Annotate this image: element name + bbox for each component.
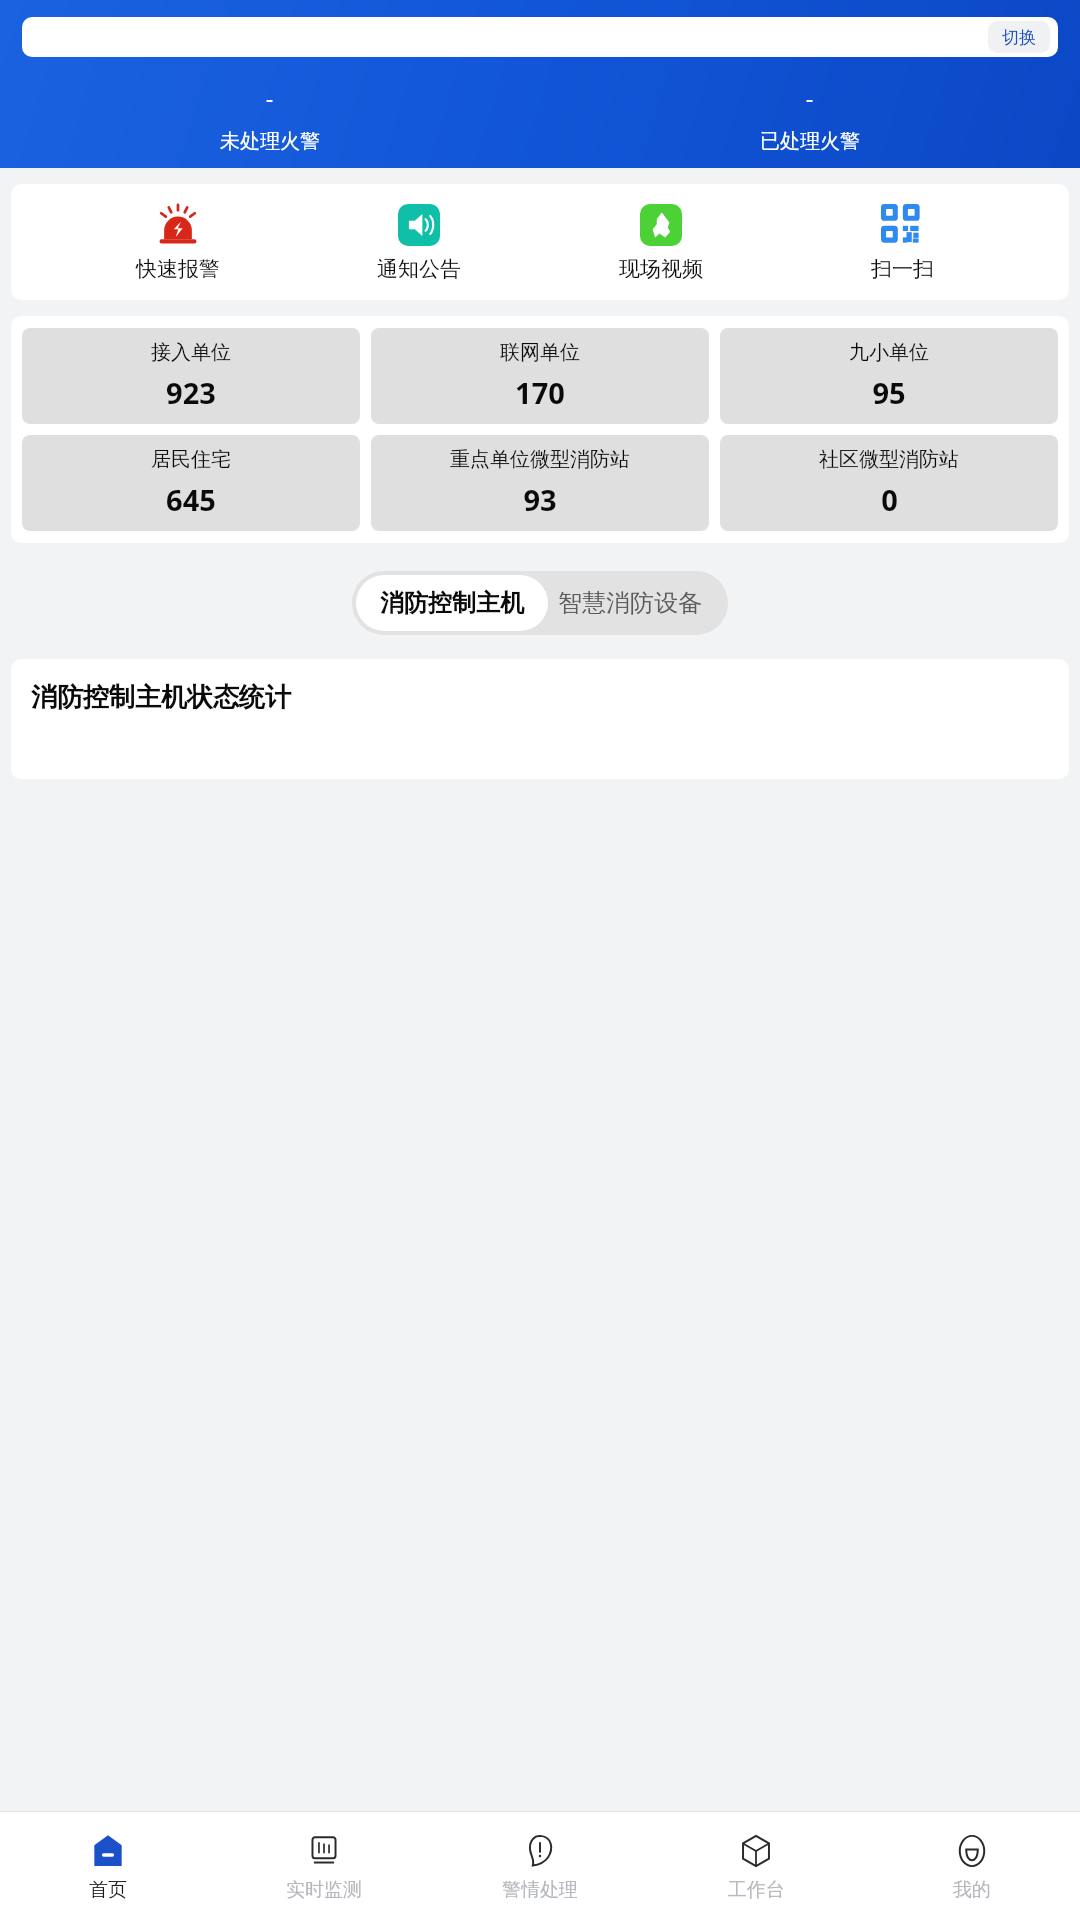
staticText: 居民住宅 — [151, 447, 231, 472]
staticText: - — [266, 83, 274, 113]
staticText: 实时监测 — [286, 1878, 362, 1902]
staticText: - — [806, 83, 814, 113]
staticText: 快速报警 — [136, 256, 220, 282]
staticText: 切换 — [1002, 27, 1036, 48]
button[interactable]: 社区微型消防站 — [720, 435, 1058, 531]
staticText: 现场视频 — [619, 256, 703, 282]
staticText: 645 — [166, 480, 216, 519]
button[interactable]: 我的 — [864, 1825, 1080, 1908]
button[interactable]: 居民住宅 — [22, 435, 360, 531]
button[interactable]: 接入单位 — [22, 328, 360, 424]
staticText: 首页 — [89, 1878, 127, 1902]
button[interactable]: 快速报警 — [103, 201, 253, 284]
staticText: 九小单位 — [849, 340, 929, 365]
button[interactable]: 切换 — [988, 21, 1050, 53]
staticText: 0 — [881, 480, 898, 519]
button[interactable]: 智慧消防设备 — [552, 575, 728, 631]
button[interactable]: 首页 — [0, 1825, 216, 1908]
staticText: 消防控制主机状态统计 — [31, 681, 291, 714]
staticText: 智慧消防设备 — [558, 588, 702, 618]
button[interactable]: 切换 — [22, 17, 1058, 57]
staticText: 已处理火警 — [760, 129, 860, 154]
staticText: 170 — [515, 373, 565, 412]
button[interactable]: 现场视频 — [586, 201, 736, 284]
staticText: 95 — [872, 373, 906, 412]
staticText: 我的 — [953, 1878, 991, 1902]
staticText: 工作台 — [728, 1878, 785, 1902]
staticText: 93 — [523, 480, 557, 519]
button[interactable]: 扫一扫 — [827, 201, 977, 284]
button[interactable]: 工作台 — [648, 1825, 864, 1908]
staticText: 未处理火警 — [220, 129, 320, 154]
staticText: 通知公告 — [377, 256, 461, 282]
staticText: 社区微型消防站 — [819, 447, 959, 472]
staticText: 接入单位 — [151, 340, 231, 365]
button[interactable]: - — [540, 83, 1080, 154]
staticText: 联网单位 — [500, 340, 580, 365]
staticText: 扫一扫 — [871, 256, 934, 282]
button[interactable]: 警情处理 — [432, 1825, 648, 1908]
staticText: 消防控制主机 — [380, 588, 524, 618]
button[interactable]: 九小单位 — [720, 328, 1058, 424]
staticText: 923 — [166, 373, 216, 412]
button[interactable]: 通知公告 — [344, 201, 494, 284]
staticText: 重点单位微型消防站 — [450, 447, 630, 472]
button[interactable]: 重点单位微型消防站 — [371, 435, 709, 531]
button[interactable]: 消防控制主机 — [356, 575, 548, 631]
button[interactable]: 联网单位 — [371, 328, 709, 424]
button[interactable]: 实时监测 — [216, 1825, 432, 1908]
button[interactable]: - — [0, 83, 540, 154]
staticText: 警情处理 — [502, 1878, 578, 1902]
